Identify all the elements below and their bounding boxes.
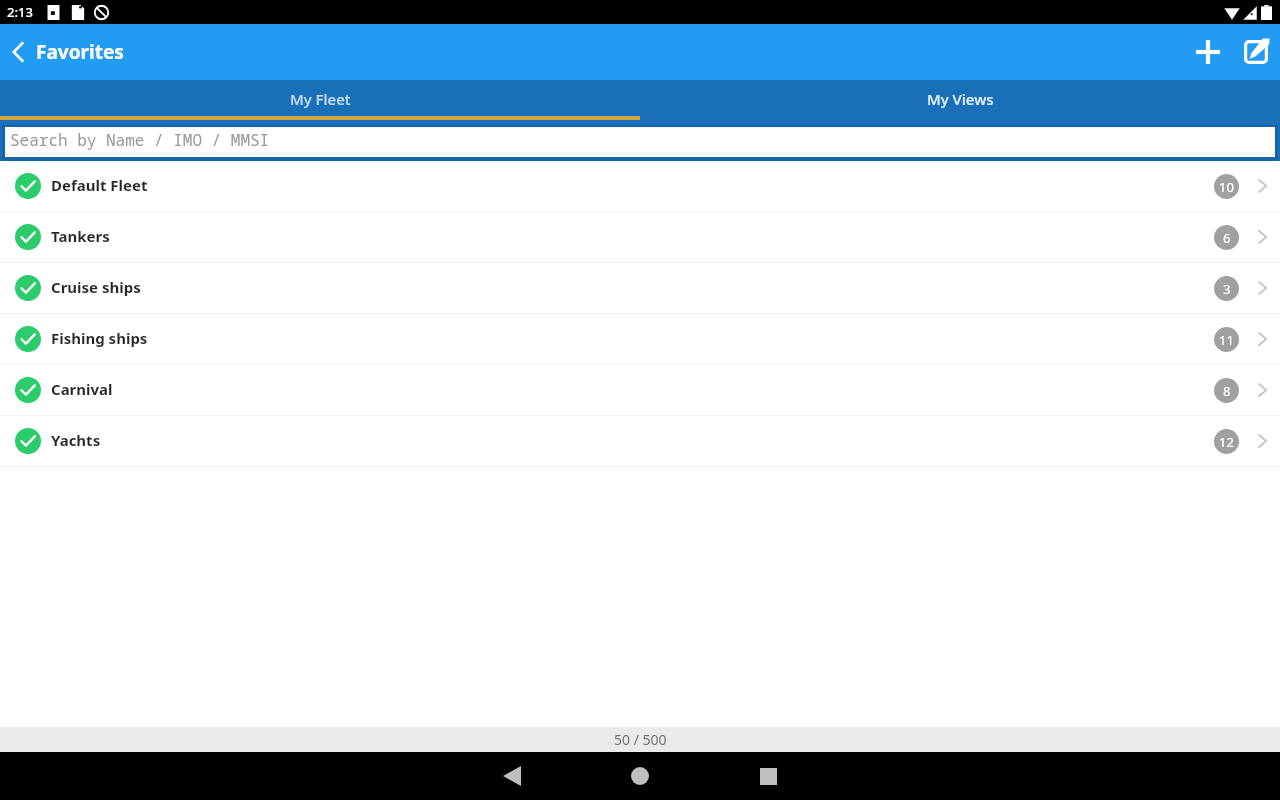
button[interactable]: Yachts [0, 416, 1280, 466]
button[interactable]: Default Fleet [0, 161, 1280, 211]
button[interactable]: Back [0, 24, 36, 80]
button[interactable]: Cruise ships [0, 263, 1280, 313]
button[interactable]: Edit [1232, 24, 1280, 80]
staticText: 12 [1219, 433, 1234, 451]
button[interactable]: My Fleet [0, 80, 640, 117]
staticText: 11 [1219, 331, 1234, 349]
staticText: 10 [1219, 178, 1234, 196]
button[interactable]: Fishing ships [0, 314, 1280, 364]
staticText: My Fleet [290, 89, 351, 109]
staticText: 3 [1223, 280, 1231, 298]
staticText: 6 [1223, 229, 1231, 247]
button[interactable]: Add [1184, 24, 1232, 80]
button[interactable]: Back [484, 752, 540, 800]
button[interactable]: Carnival [0, 365, 1280, 415]
button[interactable]: Recents [740, 752, 796, 800]
button[interactable]: Tankers [0, 212, 1280, 262]
button[interactable]: Search by Name / IMO / MMSI [5, 127, 1275, 157]
staticText: Default Fleet [51, 175, 148, 195]
staticText: Fishing ships [51, 328, 148, 348]
staticText: Yachts [51, 430, 101, 450]
staticText: Cruise ships [51, 277, 141, 297]
staticText: 8 [1223, 382, 1231, 400]
staticText: Favorites [36, 39, 124, 65]
staticText: 2:13 [7, 3, 33, 21]
staticText: 50 / 500 [614, 730, 667, 749]
button[interactable]: My Views [640, 80, 1280, 117]
staticText: Tankers [51, 226, 110, 246]
staticText: Carnival [51, 379, 113, 399]
staticText: Search by Name / IMO / MMSI [10, 129, 270, 151]
button[interactable]: Home [612, 752, 668, 800]
staticText: My Views [927, 89, 994, 109]
